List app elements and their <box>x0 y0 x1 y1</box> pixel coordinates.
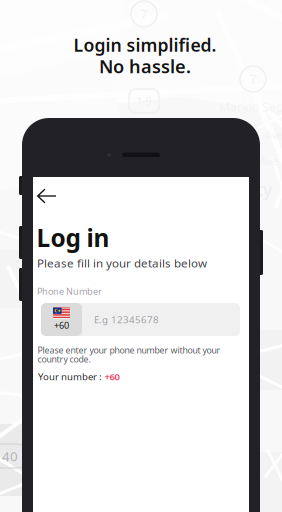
staticText: 40 <box>2 447 18 465</box>
staticText: ty <box>256 178 272 201</box>
button[interactable]: Select country code <box>41 303 82 336</box>
staticText: +60 <box>54 319 69 331</box>
staticText: No hassle. <box>99 54 191 79</box>
staticText: Phone Number <box>37 285 102 297</box>
staticText: Marion Sec <box>219 99 282 115</box>
staticText: Please enter your phone number without y… <box>37 344 220 356</box>
button[interactable]: Back <box>36 185 66 207</box>
staticText: Ave <box>265 128 282 142</box>
staticText: country code. <box>37 353 90 365</box>
staticText: 7 <box>249 71 256 87</box>
staticText: Login simplified. <box>73 33 216 57</box>
staticText: 1·9 <box>136 94 151 108</box>
staticText: +60 <box>104 370 119 383</box>
staticText: E.g 12345678 <box>94 313 159 326</box>
staticText: Your number : <box>38 370 102 383</box>
staticText: 7 <box>140 6 147 22</box>
staticText: P Ave <box>251 154 278 168</box>
staticText: Log in <box>36 221 109 254</box>
staticText: Please fill in your details below <box>37 255 207 271</box>
